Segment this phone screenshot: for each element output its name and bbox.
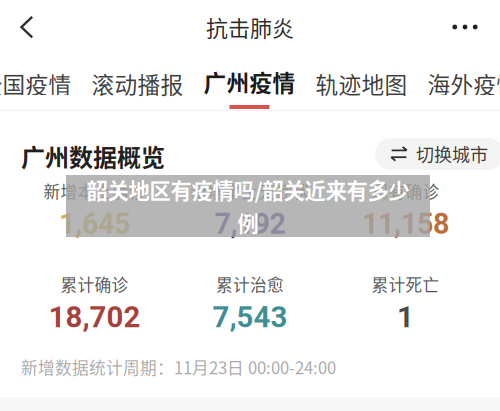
staticText: 累计确诊 bbox=[60, 272, 128, 296]
button[interactable]: 返回 bbox=[2, 2, 52, 52]
button[interactable]: 广州疫情 bbox=[193, 58, 305, 109]
staticText: 新增本土无症状 bbox=[190, 179, 309, 203]
staticText: 例 bbox=[237, 207, 258, 238]
staticText: 11月23日 00:00-24:00 bbox=[174, 355, 336, 379]
staticText: 7,543 bbox=[212, 300, 287, 334]
staticText: 广州疫情 bbox=[203, 65, 295, 98]
staticText: 新增本土确诊 bbox=[43, 179, 145, 203]
staticText: 滚动播报 bbox=[91, 67, 183, 100]
button[interactable]: 更多 bbox=[438, 2, 492, 52]
staticText: 轨迹地图 bbox=[315, 67, 407, 100]
staticText: 累计治愈 bbox=[216, 272, 284, 296]
button[interactable]: 全国疫情 bbox=[0, 58, 81, 109]
staticText: 全国疫情 bbox=[0, 67, 71, 100]
staticText: 新增数据统计周期： bbox=[21, 355, 174, 379]
staticText: 11,158 bbox=[362, 207, 449, 241]
button[interactable]: 轨迹地图 bbox=[305, 58, 417, 109]
button[interactable]: 滚动播报 bbox=[81, 58, 193, 109]
staticText: 1 bbox=[397, 300, 414, 334]
staticText: 广州数据概览 bbox=[21, 139, 165, 173]
staticText: 抗击肺炎 bbox=[206, 11, 294, 43]
staticText: 18,702 bbox=[48, 300, 140, 334]
staticText: 累计死亡 bbox=[371, 272, 439, 296]
staticText: 现有确诊 bbox=[371, 179, 439, 203]
staticText: 1,645 bbox=[59, 207, 130, 241]
button[interactable]: 海外疫情 bbox=[417, 58, 500, 109]
staticText: 海外疫情 bbox=[427, 67, 500, 100]
staticText: 7,192 bbox=[214, 207, 285, 241]
staticText: 韶关地区有疫情吗/韶关近来有多少 bbox=[86, 174, 409, 205]
staticText: 切换城市 bbox=[416, 141, 488, 167]
button[interactable]: 切换城市 bbox=[375, 138, 500, 170]
